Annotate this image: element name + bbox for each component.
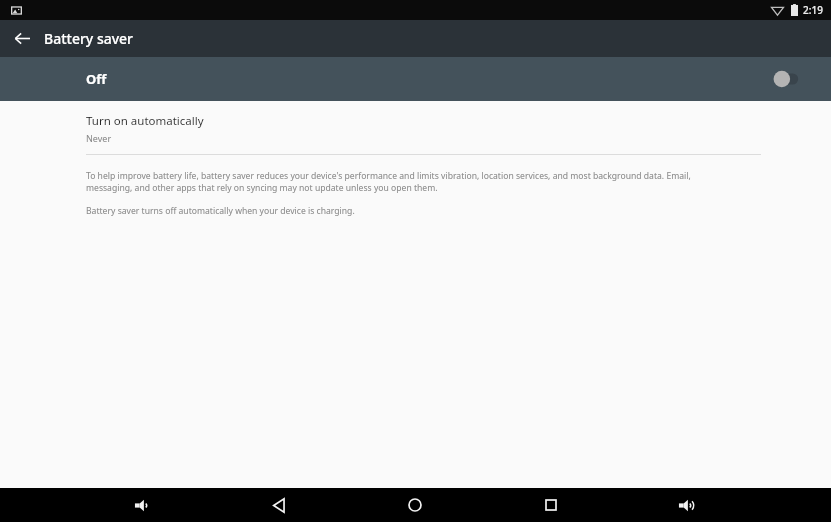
staticText: Battery saver turns off automatically wh…: [86, 205, 355, 217]
other: Battery saver toggle: [767, 64, 813, 94]
staticText: Never: [86, 132, 112, 144]
button[interactable]: Back: [256, 488, 302, 522]
button[interactable]: Volume up: [664, 488, 710, 522]
staticText: To help improve battery life, battery sa…: [86, 170, 739, 194]
staticText: Off: [86, 70, 107, 88]
staticText: Turn on automatically: [86, 113, 204, 129]
button[interactable]: Turn on automatically: [0, 101, 831, 154]
button[interactable]: Off: [0, 57, 831, 101]
staticText: Battery saver: [44, 29, 134, 48]
button[interactable]: Recents: [528, 488, 574, 522]
button[interactable]: Home: [392, 488, 438, 522]
button[interactable]: Volume down: [120, 488, 166, 522]
button[interactable]: Back: [0, 20, 44, 57]
staticText: 2:19: [803, 3, 823, 17]
